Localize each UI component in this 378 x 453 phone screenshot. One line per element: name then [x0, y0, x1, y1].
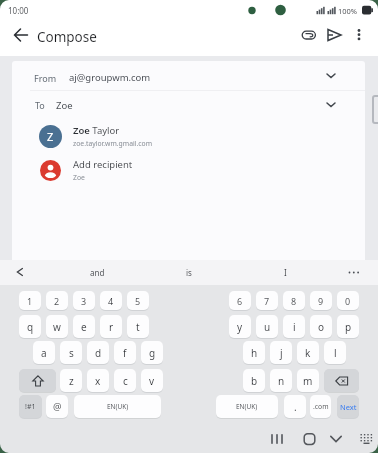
button[interactable]: p	[337, 315, 359, 338]
button[interactable]: b	[243, 369, 265, 392]
staticText: 0	[345, 295, 351, 307]
button[interactable]: EN(UK)	[74, 395, 161, 418]
button[interactable]: g	[141, 341, 163, 364]
staticText: Next	[340, 402, 357, 412]
button[interactable]	[323, 24, 345, 46]
staticText: v	[149, 374, 155, 388]
button[interactable]: i	[283, 315, 305, 338]
button[interactable]: 9	[310, 291, 332, 310]
button[interactable]: To	[12, 91, 365, 119]
button[interactable]	[320, 425, 350, 453]
staticText: a	[41, 346, 47, 360]
button[interactable]: h	[243, 341, 265, 364]
button[interactable]: z	[60, 369, 82, 392]
button[interactable]: 4	[100, 291, 122, 310]
staticText: 5	[135, 295, 141, 307]
button[interactable]: Z	[12, 119, 365, 153]
staticText: 1	[27, 295, 33, 307]
button[interactable]	[350, 425, 378, 453]
staticText: k	[305, 346, 311, 360]
staticText: EN(UK)	[107, 402, 129, 411]
button[interactable]: 5	[127, 291, 149, 310]
staticText: 10:00	[8, 5, 29, 16]
button[interactable]: v	[141, 369, 163, 392]
button[interactable]: Add recipient	[12, 153, 365, 187]
staticText: x	[95, 374, 101, 388]
button[interactable]	[19, 369, 56, 392]
staticText: EN(UK)	[236, 402, 258, 411]
button[interactable]	[8, 22, 34, 48]
button[interactable]: c	[114, 369, 136, 392]
button[interactable]: 0	[337, 291, 359, 310]
button[interactable]: From	[12, 61, 365, 90]
staticText: y	[237, 320, 243, 334]
staticText: To	[35, 99, 45, 111]
staticText: r	[109, 320, 114, 334]
button[interactable]	[260, 425, 290, 453]
staticText: n	[278, 374, 285, 388]
staticText: u	[264, 320, 271, 334]
staticText: m	[303, 374, 313, 388]
button[interactable]: .	[284, 395, 306, 418]
staticText: is	[186, 267, 192, 278]
button[interactable]: s	[60, 341, 82, 364]
button[interactable]: d	[87, 341, 109, 364]
button[interactable]	[6, 260, 34, 285]
button[interactable]: o	[310, 315, 332, 338]
button[interactable]: f	[114, 341, 136, 364]
button[interactable]: l	[324, 341, 346, 364]
button[interactable]	[298, 24, 320, 46]
staticText: and	[90, 267, 105, 278]
button[interactable]: x	[87, 369, 109, 392]
button[interactable]: Next	[337, 395, 359, 418]
button[interactable]: 7	[256, 291, 278, 310]
button[interactable]: 2	[46, 291, 68, 310]
staticText: c	[123, 374, 128, 388]
button[interactable]: @	[46, 395, 68, 418]
button[interactable]: is	[152, 260, 226, 285]
button[interactable]: a	[33, 341, 55, 364]
button[interactable]	[324, 369, 359, 392]
button[interactable]: q	[19, 315, 41, 338]
staticText: 9	[318, 295, 324, 307]
button[interactable]: u	[256, 315, 278, 338]
button[interactable]: EN(UK)	[216, 395, 278, 418]
button[interactable]: r	[100, 315, 122, 338]
staticText: 100%	[338, 6, 358, 16]
button[interactable]: 3	[73, 291, 95, 310]
button[interactable]	[340, 260, 370, 285]
button[interactable]: j	[270, 341, 292, 364]
button[interactable]: n	[270, 369, 292, 392]
staticText: h	[251, 346, 258, 360]
button[interactable]: t	[127, 315, 149, 338]
staticText: 2	[54, 295, 60, 307]
button[interactable]: 1	[19, 291, 41, 310]
staticText: q	[27, 320, 34, 334]
staticText: e	[81, 320, 87, 334]
button[interactable]: !#1	[19, 395, 42, 418]
staticText: g	[149, 346, 156, 360]
staticText: Compose	[37, 28, 97, 46]
button[interactable]: w	[46, 315, 68, 338]
staticText: d	[95, 346, 102, 360]
staticText: !#1	[25, 402, 36, 412]
button[interactable]: 8	[283, 291, 305, 310]
staticText: 7	[264, 295, 270, 307]
button[interactable]: and	[60, 260, 134, 285]
staticText: l	[334, 346, 337, 360]
staticText: i	[293, 320, 296, 334]
button[interactable]: y	[229, 315, 251, 338]
button[interactable]: k	[297, 341, 319, 364]
button[interactable]: 6	[229, 291, 251, 310]
staticText: 3	[81, 295, 87, 307]
button[interactable]	[349, 24, 369, 46]
button[interactable]: I	[248, 260, 322, 285]
button[interactable]: .com	[310, 395, 331, 418]
button[interactable]: m	[297, 369, 319, 392]
button[interactable]	[290, 425, 320, 453]
button[interactable]	[372, 95, 378, 124]
staticText: zoe.taylor.wm.gmail.com	[73, 139, 153, 148]
staticText: I	[284, 267, 287, 278]
button[interactable]: e	[73, 315, 95, 338]
staticText: Zoe	[73, 173, 85, 182]
